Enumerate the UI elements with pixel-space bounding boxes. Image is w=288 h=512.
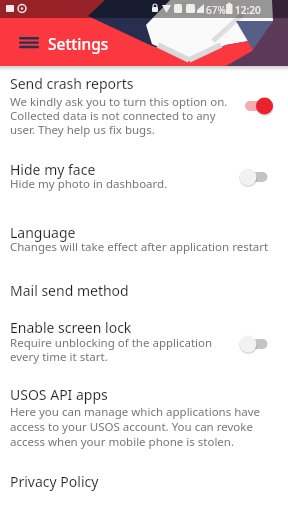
- staticText: user. They help us fix bugs.: [10, 122, 155, 138]
- staticText: every time it start.: [10, 349, 108, 365]
- button[interactable]: Enable screen lock: [0, 308, 288, 375]
- staticText: We kindly ask you to turn this option on…: [10, 94, 228, 110]
- staticText: 12:20: [235, 3, 261, 17]
- staticText: Hide my face: [10, 160, 96, 179]
- staticText: Enable screen lock: [10, 318, 132, 337]
- staticText: Mail send method: [10, 281, 129, 300]
- staticText: access to your USOS account. You can rev…: [10, 419, 253, 435]
- staticText: USOS API apps: [10, 385, 108, 404]
- button[interactable]: Hide my face: [0, 148, 288, 208]
- staticText: Privacy Policy: [10, 472, 99, 491]
- button[interactable]: Language: [0, 208, 288, 268]
- button[interactable]: Mail send method: [0, 268, 288, 308]
- staticText: Here you can manage which applications h…: [10, 404, 261, 420]
- button[interactable]: USOS API apps: [0, 375, 288, 460]
- staticText: 67%: [206, 3, 226, 17]
- button[interactable]: Privacy Policy: [0, 460, 288, 505]
- staticText: Require unblocking of the application: [10, 335, 213, 351]
- button[interactable]: [12, 30, 46, 56]
- staticText: Changes will take effect after applicati…: [10, 239, 269, 255]
- staticText: Language: [10, 223, 76, 242]
- button[interactable]: Send crash reports: [0, 66, 288, 148]
- staticText: access when your mobile phone is stolen.: [10, 434, 235, 450]
- staticText: Settings: [48, 33, 109, 54]
- staticText: Collected data is not connected to any: [10, 108, 216, 124]
- staticText: Send crash reports: [10, 74, 134, 93]
- staticText: Hide my photo in dashboard.: [10, 176, 168, 192]
